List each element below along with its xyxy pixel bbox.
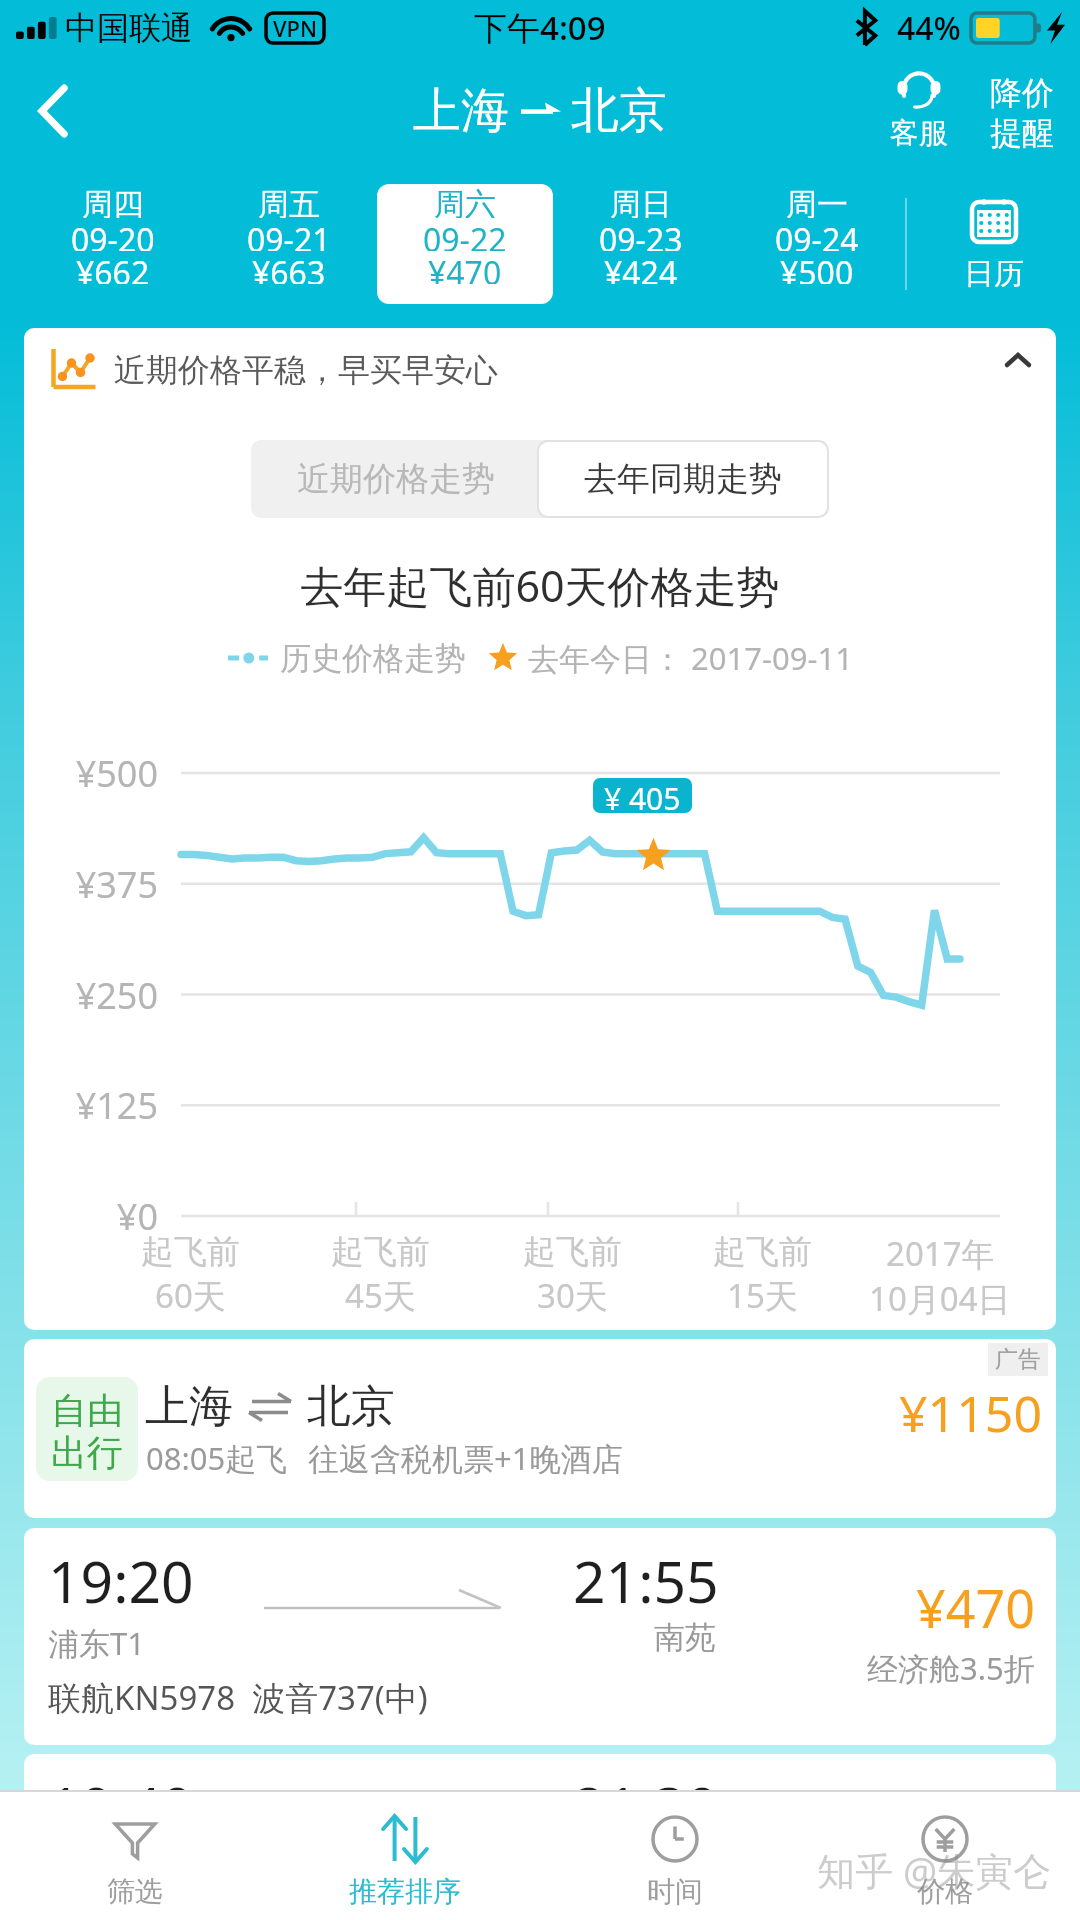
staticText: 推荐排序 [349, 1874, 461, 1909]
button[interactable]: 周五 [201, 184, 377, 304]
staticText: ¥1150 [899, 1379, 1042, 1447]
staticText: 广告 [995, 1345, 1041, 1374]
staticText: ¥250 [24, 971, 158, 1020]
staticText: 下午4:09 [474, 5, 606, 50]
staticText: 起飞前 [141, 1231, 240, 1273]
staticText: 09-21 [247, 218, 331, 251]
staticText: ¥500 [780, 251, 854, 284]
staticText: 往返含税机票+1晚酒店 [308, 1437, 623, 1479]
staticText: 自由 [51, 1388, 123, 1430]
staticText: ¥125 [24, 1081, 158, 1130]
staticText: 周四 [82, 185, 144, 218]
staticText: 30天 [537, 1273, 608, 1318]
button[interactable]: 客服 [880, 67, 958, 156]
staticText: 周日 [610, 185, 672, 218]
staticText: 周六 [434, 185, 496, 218]
staticText: 19:40 [48, 1768, 194, 1844]
staticText: 联航KN5978 波音737(中) [48, 1675, 428, 1720]
staticText: 09-23 [599, 218, 683, 251]
staticText: ¥424 [604, 251, 678, 284]
staticText: ¥662 [76, 251, 150, 284]
staticText: 周五 [258, 185, 320, 218]
staticText: 时间 [647, 1874, 703, 1909]
button[interactable]: 时间 [540, 1803, 810, 1909]
staticText: 21:55 [573, 1542, 719, 1620]
staticText: ¥470 [428, 251, 502, 284]
staticText: 筛选 [107, 1874, 163, 1909]
button[interactable]: 周六 [377, 184, 553, 304]
staticText: 中国联通 [65, 8, 193, 48]
staticText: 周一 [786, 185, 848, 218]
staticText: 19:20 [48, 1542, 194, 1620]
staticText: 09-20 [71, 218, 155, 251]
staticText: 45天 [345, 1273, 416, 1318]
staticText: 知乎 @朱寅仑 [817, 1844, 1052, 1896]
staticText: 起飞前 [523, 1231, 622, 1273]
button[interactable]: 19:20 [24, 1528, 1056, 1745]
staticText: 南苑 [576, 1618, 716, 1657]
staticText: 价格 [917, 1874, 973, 1909]
button[interactable]: Back [14, 71, 94, 151]
staticText: 上海 [145, 1379, 233, 1434]
button[interactable]: 周一 [729, 184, 905, 304]
staticText: 浦东T1 [48, 1622, 145, 1664]
button[interactable]: 近期价格平稳，早买早安心 [24, 328, 1056, 412]
staticText: 历史价格走势 [280, 639, 466, 678]
staticText: 客服 [890, 115, 948, 152]
staticText: 降价 [990, 73, 1054, 113]
staticText: 21:30 [573, 1768, 719, 1844]
staticText: 经济舱3.5折 [867, 1647, 1035, 1689]
staticText: 09-24 [775, 218, 859, 251]
button[interactable]: 周四 [25, 184, 201, 304]
button[interactable]: 日历 [907, 187, 1080, 301]
staticText: ¥663 [252, 251, 326, 284]
button[interactable]: 周日 [553, 184, 729, 304]
button[interactable]: Collapse [986, 338, 1050, 402]
staticText: 09-22 [423, 218, 507, 251]
staticText: ¥500 [24, 749, 158, 798]
staticText: 提醒 [990, 113, 1054, 151]
staticText: 60天 [155, 1273, 226, 1318]
staticText: ¥470 [916, 1572, 1035, 1643]
staticText: 15天 [727, 1273, 798, 1318]
staticText: 去年今日： 2017-09-11 [528, 637, 853, 679]
staticText: 08:05起飞 [146, 1437, 288, 1479]
staticText: 出行 [51, 1430, 123, 1470]
staticText: 44% [897, 6, 961, 50]
button[interactable]: 去年同期走势 [539, 442, 827, 516]
button[interactable]: 筛选 [0, 1803, 270, 1909]
staticText: 近期价格走势 [297, 458, 495, 500]
staticText: 10月04日 [869, 1276, 1011, 1321]
staticText: 去年同期走势 [584, 458, 782, 500]
staticText: 近期价格平稳，早买早安心 [114, 350, 498, 390]
button[interactable]: 价格 [810, 1803, 1080, 1909]
staticText: VPN [273, 13, 318, 43]
staticText: 上海 [413, 81, 509, 141]
button[interactable]: 自由 [24, 1339, 1056, 1518]
button[interactable]: 19:40 [24, 1754, 1056, 1844]
button[interactable]: 推荐排序 [270, 1803, 540, 1909]
button[interactable]: 降价 [986, 69, 1058, 155]
staticText: ¥ 405 [604, 778, 681, 813]
staticText: 起飞前 [713, 1231, 812, 1273]
staticText: 日历 [964, 255, 1024, 293]
staticText: ¥0 [24, 1192, 158, 1241]
button[interactable]: 近期价格走势 [251, 440, 540, 518]
staticText: ¥375 [24, 860, 158, 909]
staticText: 北京 [307, 1379, 395, 1434]
staticText: 起飞前 [331, 1231, 430, 1273]
staticText: 去年起飞前60天价格走势 [24, 556, 1056, 615]
staticText: 2017年 [886, 1231, 995, 1276]
staticText: 北京 [571, 81, 667, 141]
